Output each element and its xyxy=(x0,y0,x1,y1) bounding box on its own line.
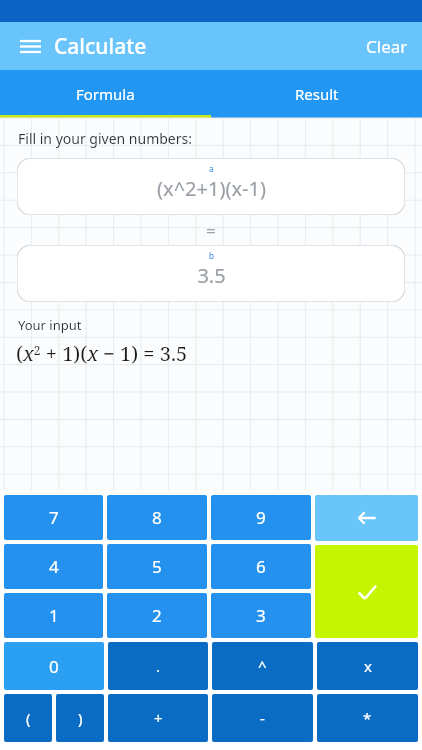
button[interactable]: 5 xyxy=(107,544,207,589)
button[interactable]: 6 xyxy=(211,544,311,589)
button[interactable]: 9 xyxy=(211,495,311,540)
button[interactable]: Backspace xyxy=(315,495,418,541)
button[interactable]: + xyxy=(108,694,208,742)
staticText: ^ xyxy=(258,656,267,676)
staticText: 8 xyxy=(152,506,162,529)
staticText: 0 xyxy=(49,655,59,678)
button[interactable]: Clear xyxy=(352,22,422,70)
button[interactable]: b xyxy=(17,245,405,302)
button[interactable]: - xyxy=(212,694,313,742)
staticText: 3 xyxy=(256,604,266,627)
button[interactable]: Open navigation menu xyxy=(10,26,50,66)
button[interactable]: 0 xyxy=(4,642,104,690)
button[interactable]: Formula xyxy=(0,70,211,118)
staticText: 7 xyxy=(49,506,59,529)
button[interactable]: x xyxy=(317,642,418,690)
staticText: (x^2+1)(x-1) xyxy=(157,175,266,202)
button[interactable]: 4 xyxy=(4,544,103,589)
button[interactable]: 7 xyxy=(4,495,103,540)
staticText: 1 xyxy=(49,604,59,627)
staticText: ) xyxy=(78,708,83,728)
staticText: Your input xyxy=(18,316,82,334)
button[interactable]: Confirm xyxy=(315,545,418,638)
staticText: + xyxy=(154,708,163,728)
button[interactable]: ( xyxy=(4,694,52,742)
staticText: 9 xyxy=(256,506,266,529)
button[interactable]: 3 xyxy=(211,593,311,638)
staticText: b xyxy=(209,250,214,261)
staticText: Clear xyxy=(366,35,408,58)
button[interactable]: ) xyxy=(56,694,104,742)
staticText: - xyxy=(260,708,265,728)
staticText: (x2 + 1)(x − 1) = 3.5 xyxy=(16,340,188,367)
staticText: 3.5 xyxy=(197,262,226,289)
button[interactable]: * xyxy=(317,694,418,742)
staticText: 2 xyxy=(152,604,162,627)
staticText: 5 xyxy=(152,555,162,578)
button[interactable]: Result xyxy=(211,70,422,118)
button[interactable]: a xyxy=(17,158,405,215)
staticText: Calculate xyxy=(54,32,147,61)
staticText: a xyxy=(209,163,214,174)
staticText: Formula xyxy=(76,84,135,104)
button[interactable]: 2 xyxy=(107,593,207,638)
button[interactable]: 1 xyxy=(4,593,103,638)
staticText: ( xyxy=(26,708,31,728)
staticText: x xyxy=(364,656,372,676)
staticText: 4 xyxy=(49,555,59,578)
staticText: Fill in your given numbers: xyxy=(18,129,192,148)
staticText: * xyxy=(363,708,372,728)
staticText: . xyxy=(156,656,161,676)
staticText: 6 xyxy=(256,555,266,578)
button[interactable]: ^ xyxy=(212,642,313,690)
staticText: Result xyxy=(295,84,339,104)
button[interactable]: 8 xyxy=(107,495,207,540)
staticText: = xyxy=(206,219,216,242)
button[interactable]: . xyxy=(108,642,208,690)
